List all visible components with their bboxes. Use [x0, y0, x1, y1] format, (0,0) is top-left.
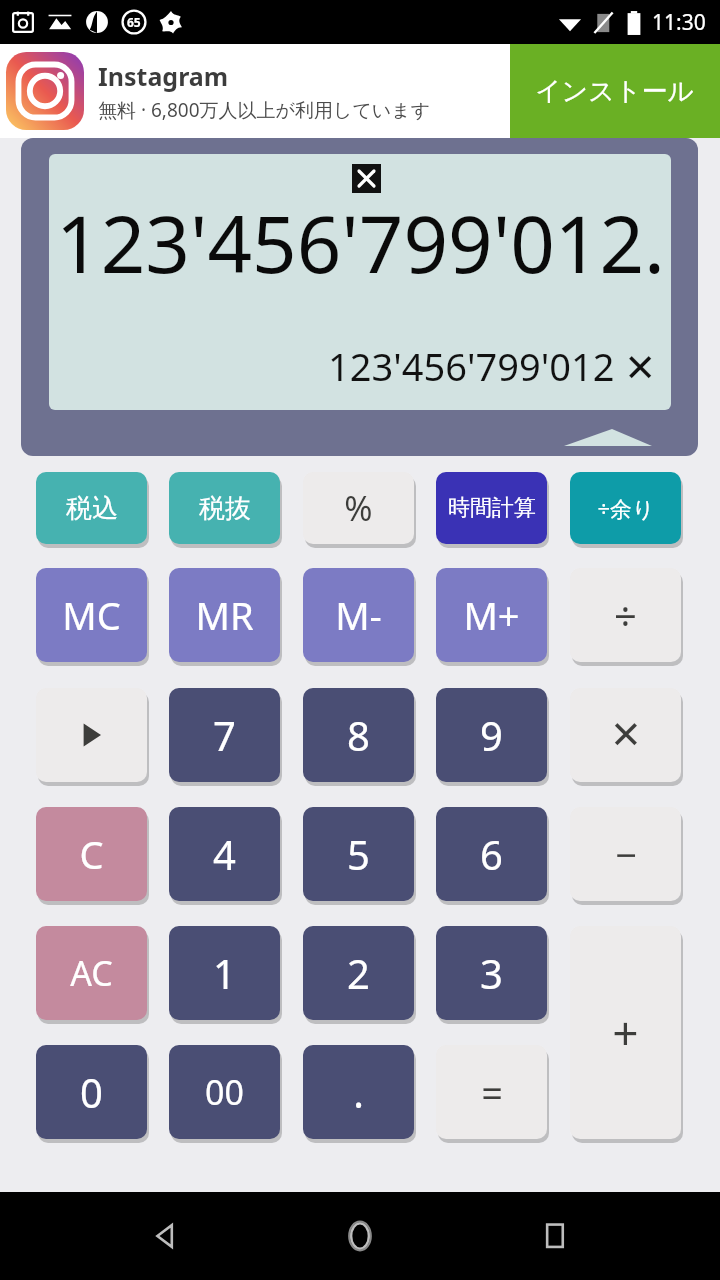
button[interactable]: = — [436, 1045, 547, 1139]
button[interactable]: AC — [36, 926, 147, 1020]
button[interactable]: 3 — [436, 926, 547, 1020]
button[interactable]: 2 — [303, 926, 414, 1020]
staticText: 00 — [205, 1069, 244, 1115]
button[interactable]: 00 — [169, 1045, 280, 1139]
staticText: MR — [195, 589, 254, 641]
button[interactable]: ÷余り — [570, 472, 681, 544]
button[interactable]: + — [570, 926, 681, 1139]
staticText: 時間計算 — [448, 494, 536, 522]
button[interactable]: 8 — [303, 688, 414, 782]
staticText: ✕ — [610, 713, 642, 757]
staticText: 65 — [127, 14, 141, 30]
button[interactable]: C — [36, 807, 147, 901]
staticText: ÷ — [614, 588, 637, 642]
staticText: インストール — [535, 75, 695, 108]
staticText: 5 — [347, 827, 370, 881]
staticText: % — [344, 485, 373, 531]
button[interactable]: Step forward — [36, 688, 147, 782]
button[interactable]: 9 — [436, 688, 547, 782]
staticText: AC — [70, 950, 113, 996]
button[interactable]: Home — [328, 1204, 392, 1268]
staticText: − — [615, 828, 637, 880]
staticText: 0 — [80, 1065, 103, 1119]
button[interactable]: 税込 — [36, 472, 147, 544]
staticText: C — [79, 828, 104, 880]
staticText: Instagram — [98, 59, 229, 93]
button[interactable]: 4 — [169, 807, 280, 901]
button[interactable]: 5 — [303, 807, 414, 901]
staticText: 11:30 — [652, 8, 706, 37]
button[interactable]: M- — [303, 568, 414, 662]
button[interactable]: M+ — [436, 568, 547, 662]
staticText: 4 — [213, 827, 236, 881]
staticText: 3 — [480, 946, 503, 1000]
button[interactable]: 税抜 — [169, 472, 280, 544]
button[interactable]: − — [570, 807, 681, 901]
staticText: ÷余り — [597, 493, 655, 523]
button[interactable]: 0 — [36, 1045, 147, 1139]
button[interactable]: 6 — [436, 807, 547, 901]
button[interactable]: % — [303, 472, 414, 544]
staticText: 9 — [480, 708, 503, 762]
button[interactable]: 1 — [169, 926, 280, 1020]
staticText: 123'456'799'012. — [56, 190, 665, 296]
staticText: 無料 · 6,800万人以上が利用しています — [98, 97, 431, 123]
staticText: 7 — [213, 708, 236, 762]
button[interactable]: MC — [36, 568, 147, 662]
staticText: = — [481, 1066, 503, 1118]
staticText: 123'456'799'012 ✕ — [328, 340, 657, 392]
staticText: 税込 — [66, 492, 118, 525]
button[interactable]: インストール — [510, 44, 720, 138]
staticText: 6 — [480, 827, 503, 881]
staticText: MC — [62, 589, 121, 641]
button[interactable]: . — [303, 1045, 414, 1139]
button[interactable]: Recents — [524, 1204, 588, 1268]
staticText: 1 — [213, 946, 236, 1000]
button[interactable]: MR — [169, 568, 280, 662]
button[interactable]: 時間計算 — [436, 472, 547, 544]
button[interactable]: Back — [132, 1204, 196, 1268]
staticText: M- — [335, 589, 382, 641]
button[interactable]: 7 — [169, 688, 280, 782]
staticText: M+ — [463, 589, 520, 641]
staticText: 2 — [347, 946, 370, 1000]
staticText: + — [612, 1001, 639, 1064]
button[interactable]: ÷ — [570, 568, 681, 662]
button[interactable]: Close — [352, 164, 381, 193]
staticText: 税抜 — [199, 492, 251, 525]
staticText: . — [353, 1065, 364, 1119]
staticText: 8 — [347, 708, 370, 762]
button[interactable]: ✕ — [570, 688, 681, 782]
